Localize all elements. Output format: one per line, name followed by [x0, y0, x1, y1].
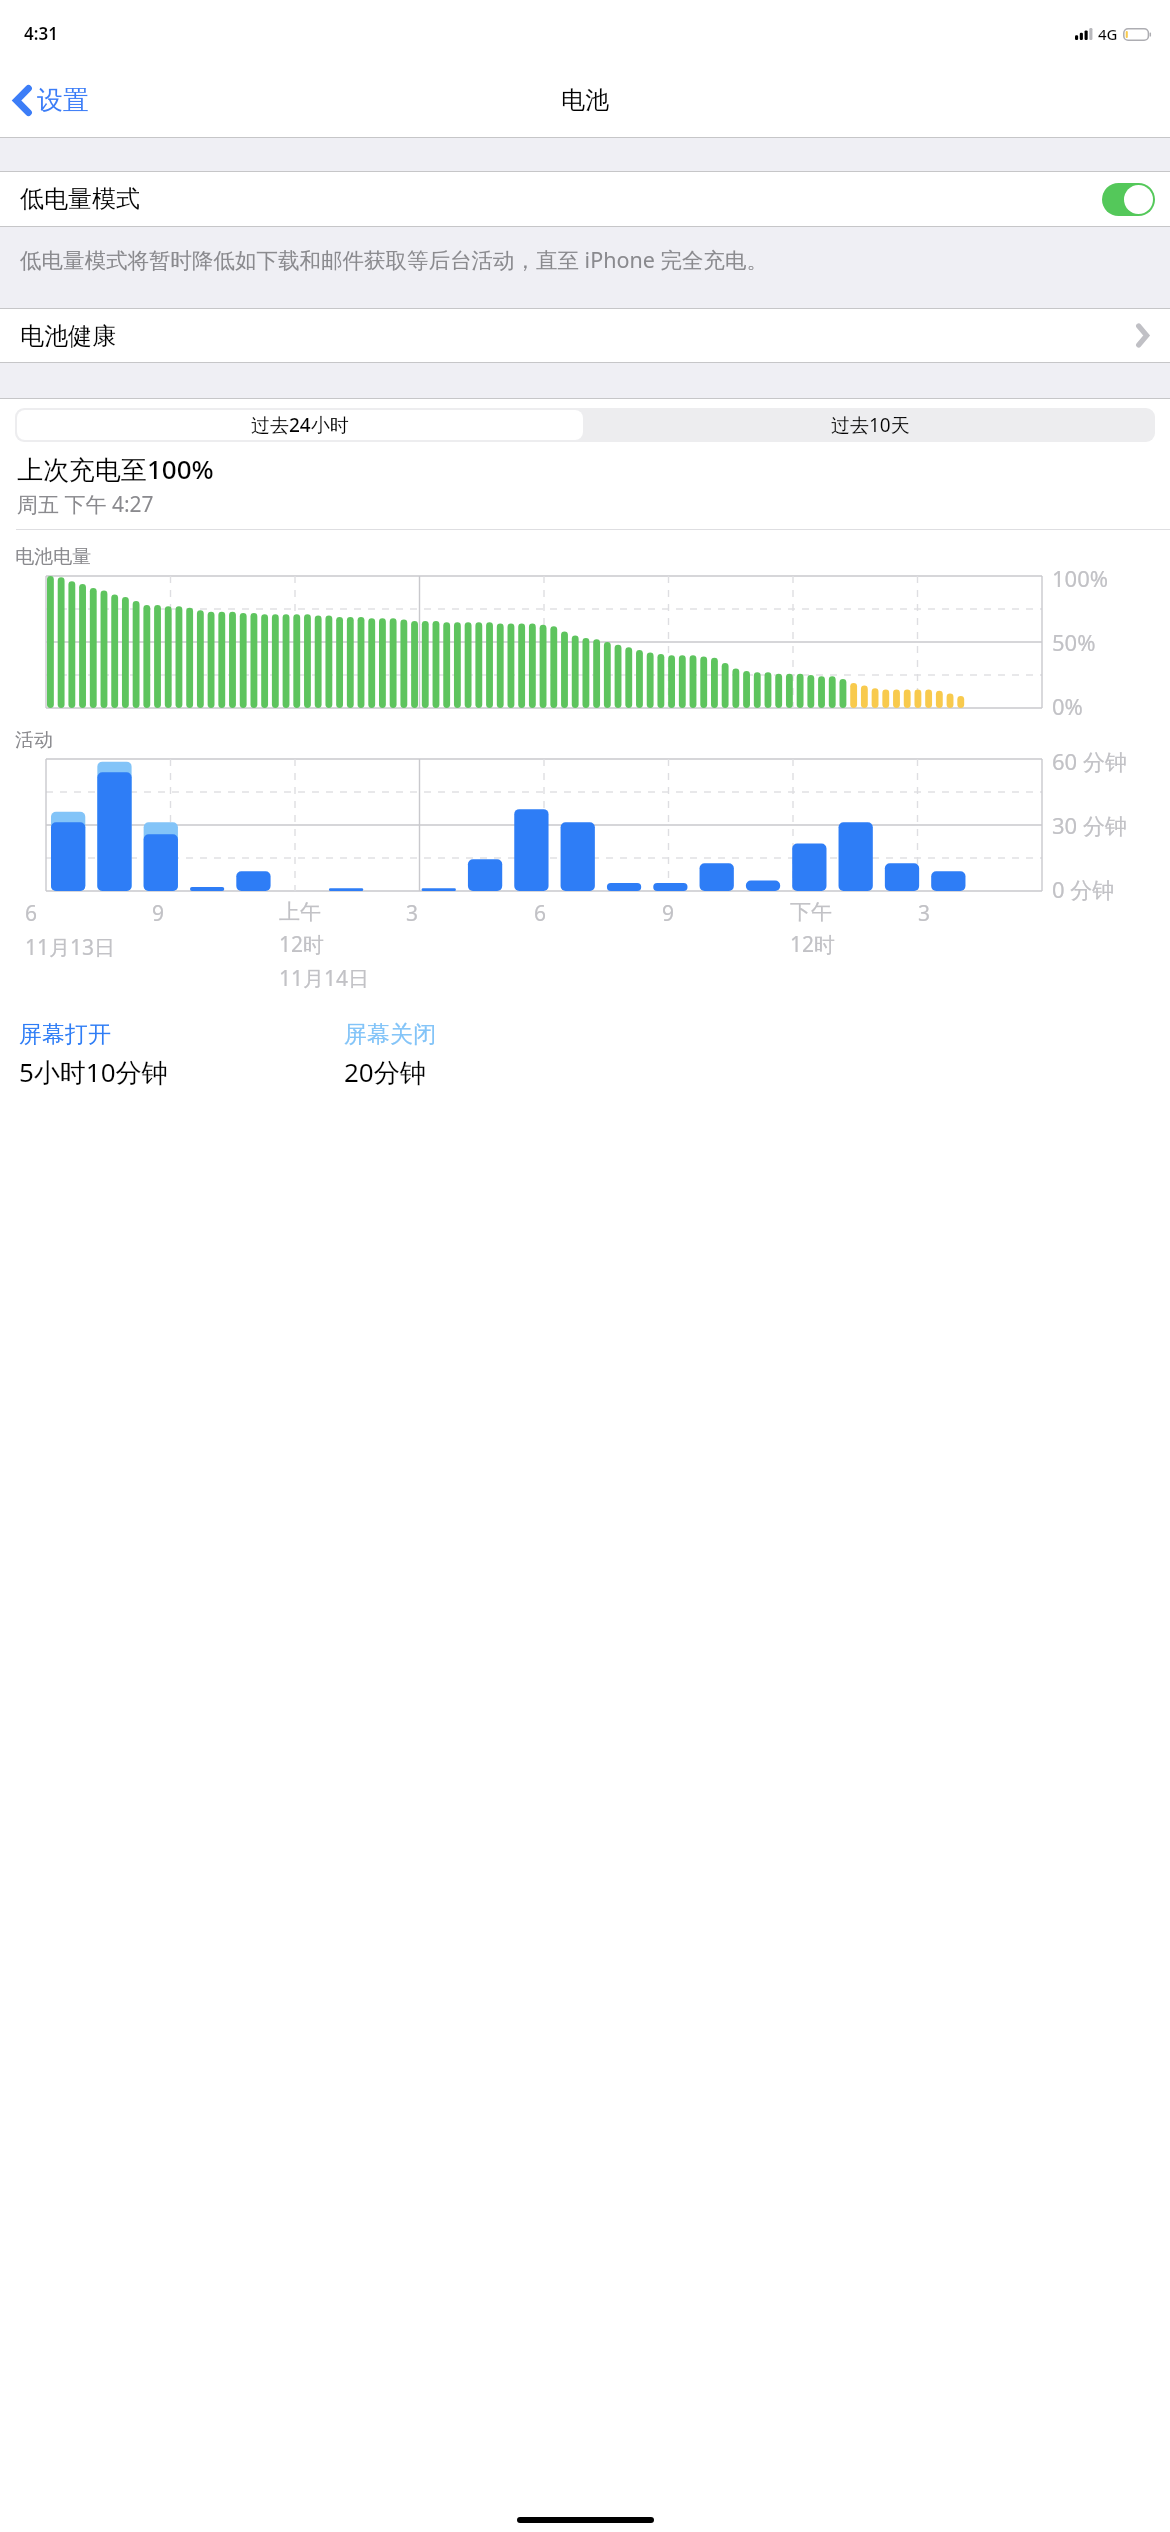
- staticText: 屏幕关闭: [344, 1020, 436, 1049]
- staticText: 上次充电至100%: [17, 451, 214, 487]
- staticText: 3: [406, 899, 419, 928]
- staticText: 设置: [37, 84, 89, 117]
- staticText: 上午: [279, 899, 321, 925]
- staticText: 12时: [279, 930, 325, 959]
- staticText: 6: [25, 899, 38, 928]
- staticText: 0 分钟: [1052, 874, 1115, 904]
- button[interactable]: 设置: [10, 76, 94, 125]
- staticText: 50%: [1052, 627, 1096, 657]
- staticText: 9: [152, 899, 165, 928]
- staticText: 活动: [15, 728, 53, 752]
- staticText: 60 分钟: [1052, 746, 1127, 776]
- button[interactable]: 过去24小时: [17, 410, 583, 440]
- staticText: 屏幕打开: [19, 1020, 111, 1049]
- staticText: 低电量模式将暂时降低如下载和邮件获取等后台活动，直至 iPhone 完全充电。: [20, 245, 768, 274]
- staticText: 100%: [1052, 563, 1109, 593]
- staticText: 5小时10分钟: [19, 1054, 168, 1090]
- staticText: 4:31: [24, 22, 58, 45]
- staticText: 过去10天: [831, 412, 910, 438]
- button[interactable]: 过去10天: [585, 408, 1155, 442]
- staticText: 电池电量: [15, 545, 91, 569]
- staticText: 电池: [561, 85, 609, 115]
- staticText: 12时: [790, 930, 836, 959]
- button[interactable]: 电池健康: [0, 309, 1170, 362]
- staticText: 11月13日: [25, 933, 116, 962]
- staticText: 6: [534, 899, 547, 928]
- staticText: 下午: [790, 899, 832, 925]
- staticText: 11月14日: [279, 964, 370, 993]
- staticText: 周五 下午 4:27: [17, 490, 154, 519]
- staticText: 低电量模式: [20, 184, 140, 214]
- staticText: 20分钟: [344, 1054, 426, 1090]
- other: 低电量模式开关: [1102, 183, 1155, 216]
- staticText: 9: [662, 899, 675, 928]
- staticText: 3: [918, 899, 931, 928]
- staticText: 0%: [1052, 691, 1083, 721]
- staticText: 4G: [1098, 24, 1118, 44]
- staticText: 电池健康: [20, 321, 116, 351]
- staticText: 过去24小时: [251, 412, 349, 438]
- button[interactable]: 低电量模式: [0, 172, 1170, 226]
- staticText: 30 分钟: [1052, 810, 1127, 840]
